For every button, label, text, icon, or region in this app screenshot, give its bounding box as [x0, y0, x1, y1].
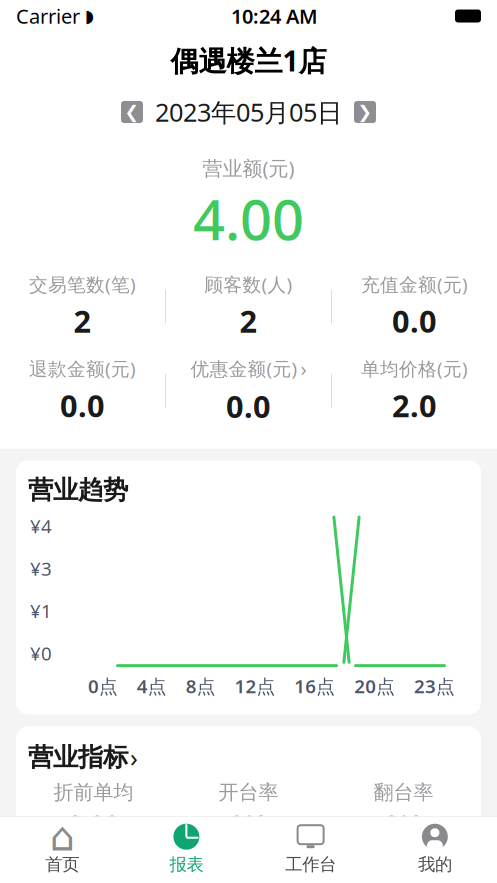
staticText: 23点 — [414, 674, 455, 698]
button[interactable]: 工作台 — [248, 817, 373, 883]
staticText: 0.0% — [408, 844, 451, 869]
staticText: 交易笔数(笔) — [29, 272, 136, 297]
staticText: 2 — [239, 300, 257, 341]
staticText: 16点 — [294, 674, 335, 698]
staticText: 营业额(元) — [202, 155, 294, 181]
staticText: ▲ — [74, 847, 86, 866]
staticText: 环比 — [201, 845, 239, 868]
staticText: 2 — [73, 300, 91, 341]
staticText: ⌂ — [50, 814, 75, 859]
staticText: 优惠金额(元) — [190, 356, 297, 381]
staticText: 0.0% — [253, 844, 296, 869]
staticText: 开台率 — [218, 780, 278, 805]
staticText: 0.0 — [60, 385, 105, 426]
staticText: ❯ — [357, 102, 372, 122]
staticText: Carrier — [16, 3, 80, 29]
staticText: ❮ — [124, 102, 139, 122]
button[interactable]: 下一天 — [354, 101, 376, 123]
staticText: ◗ — [85, 6, 94, 26]
staticText: ¥3 — [30, 556, 52, 581]
staticText: 20点 — [354, 674, 395, 698]
staticText: 工作台 — [285, 854, 336, 875]
button[interactable]: 营业指标 — [16, 726, 138, 774]
staticText: 单均价格(元) — [361, 356, 468, 381]
button[interactable]: 我的 — [373, 817, 497, 883]
staticText: 0.0 — [226, 386, 271, 426]
staticText: › — [300, 355, 306, 382]
staticText: › — [130, 740, 138, 774]
staticText: 12点 — [234, 674, 275, 698]
staticText: 0点 — [88, 674, 118, 698]
button[interactable]: 优惠金额(元) — [166, 355, 331, 427]
staticText: 退款金额(元) — [29, 356, 136, 381]
staticText: 我的 — [418, 854, 452, 875]
staticText: 充值金额(元) — [361, 272, 468, 297]
staticText: 8点 — [186, 674, 216, 698]
staticText: 0% — [229, 807, 268, 842]
staticText: 营业指标 — [28, 742, 128, 773]
staticText: 营业趋势 — [28, 474, 128, 506]
button[interactable]: 报表 — [124, 817, 248, 883]
staticText: 0.0 — [392, 300, 437, 341]
staticText: ¥1 — [30, 598, 52, 623]
staticText: 翻台率 — [373, 780, 433, 805]
staticText: 折前单均 — [53, 780, 133, 805]
staticText: 2.00 — [67, 807, 119, 842]
staticText: 2023年05月05日 — [155, 95, 342, 129]
staticText: 首页 — [45, 854, 79, 875]
staticText: ¥0 — [30, 641, 52, 666]
staticText: 2.0 — [392, 385, 437, 426]
staticText: 10:24 AM — [231, 3, 318, 29]
staticText: 环比 — [35, 845, 73, 868]
staticText: 顾客数(人) — [204, 272, 292, 297]
staticText: 偶遇楼兰1店 — [170, 42, 326, 79]
staticText: ¥4 — [30, 514, 52, 538]
staticText: 报表 — [169, 854, 203, 875]
staticText: 4点 — [137, 674, 167, 698]
staticText: 0% — [384, 807, 423, 842]
button[interactable]: 上一天 — [121, 101, 143, 123]
staticText: 4.00 — [193, 181, 304, 256]
button[interactable]: ⌂ — [0, 817, 124, 883]
